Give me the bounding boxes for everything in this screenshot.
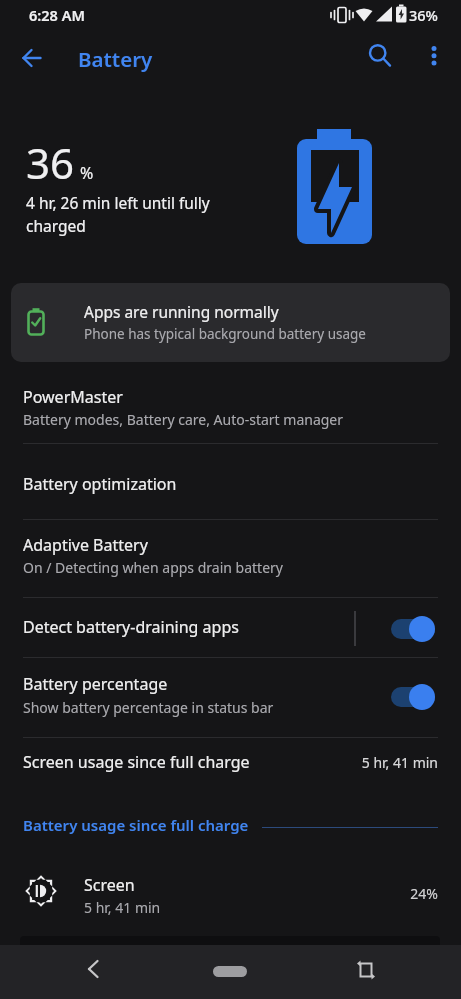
button[interactable]: PowerMaster: [0, 366, 461, 443]
staticText: Battery modes, Battery care, Auto-start …: [23, 410, 344, 429]
button[interactable]: [213, 966, 247, 977]
staticText: Phone has typical background battery usa…: [84, 325, 366, 343]
button[interactable]: [358, 33, 402, 77]
staticText: 6:28 AM: [29, 5, 85, 25]
staticText: Adaptive Battery: [23, 534, 148, 556]
staticText: %: [80, 162, 94, 184]
staticText: Show battery percentage in status bar: [23, 698, 274, 717]
staticText: Battery usage since full charge: [23, 815, 249, 835]
button[interactable]: [388, 683, 438, 711]
button[interactable]: Screen: [0, 860, 461, 924]
button[interactable]: Battery optimization: [0, 443, 461, 519]
staticText: 5 hr, 41 min: [338, 753, 438, 772]
button[interactable]: Apps are running normally: [11, 283, 450, 362]
staticText: 36%: [409, 5, 438, 25]
staticText: 5 hr, 41 min: [84, 898, 161, 917]
button[interactable]: Detect battery-draining apps: [0, 597, 461, 657]
staticText: Battery percentage: [23, 673, 168, 695]
staticText: 36: [26, 134, 75, 191]
staticText: 4 hr, 26 min left until fully charged: [26, 192, 231, 237]
button[interactable]: [388, 615, 438, 643]
button[interactable]: [414, 33, 458, 77]
button[interactable]: [12, 38, 52, 78]
staticText: Battery optimization: [23, 473, 177, 495]
staticText: Screen usage since full charge: [23, 751, 250, 773]
button[interactable]: [74, 951, 114, 991]
staticText: Battery: [78, 45, 153, 73]
button[interactable]: Battery percentage: [0, 657, 461, 737]
staticText: PowerMaster: [23, 386, 123, 408]
button[interactable]: Screen usage since full charge: [0, 737, 461, 787]
staticText: Detect battery-draining apps: [23, 616, 239, 638]
staticText: On / Detecting when apps drain battery: [23, 558, 283, 577]
staticText: 24%: [388, 884, 438, 903]
button[interactable]: [346, 951, 386, 991]
staticText: Apps are running normally: [84, 301, 279, 322]
staticText: Screen: [84, 874, 135, 896]
button[interactable]: Adaptive Battery: [0, 519, 461, 597]
